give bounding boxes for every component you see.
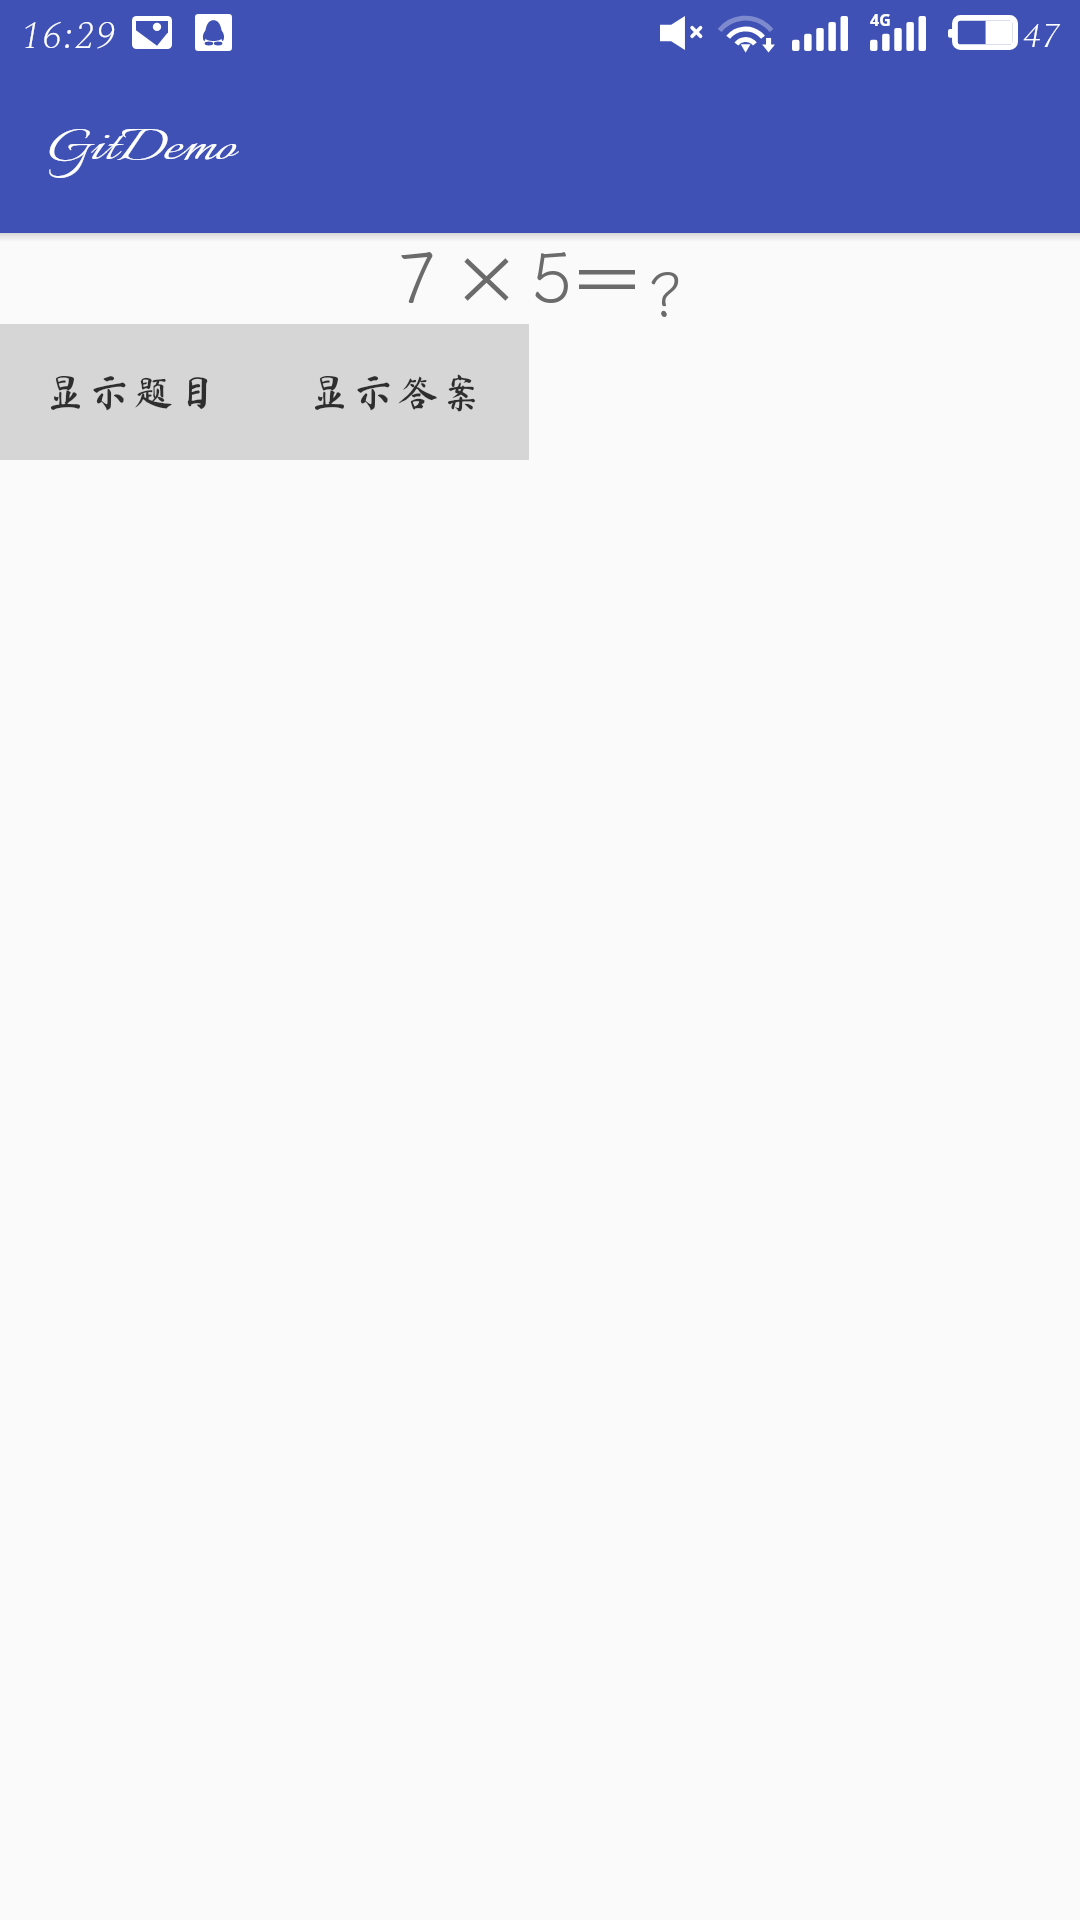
other: Wi-Fi (719, 14, 775, 53)
other: Signal strength SIM 2 (870, 16, 926, 51)
staticText: ? (646, 252, 684, 334)
staticText: 16:29 (22, 8, 118, 66)
other: Screenshot (132, 16, 172, 49)
staticText: 5 (531, 231, 573, 322)
button[interactable]: 显示答案 (268, 324, 529, 460)
staticText: 显示答案 (310, 373, 487, 412)
other: Silent mode (660, 16, 703, 50)
other: Battery 47 percent (948, 15, 1018, 50)
other: QQ (195, 14, 232, 51)
other: Signal strength SIM 1 (792, 16, 848, 51)
staticText: 7 (396, 231, 438, 322)
button[interactable]: 显示题目 (0, 324, 268, 460)
staticText: 显示题目 (46, 373, 223, 412)
staticText: 4G (870, 9, 891, 31)
staticText: 47 (1024, 10, 1062, 63)
staticText: GitDemo (47, 116, 236, 183)
